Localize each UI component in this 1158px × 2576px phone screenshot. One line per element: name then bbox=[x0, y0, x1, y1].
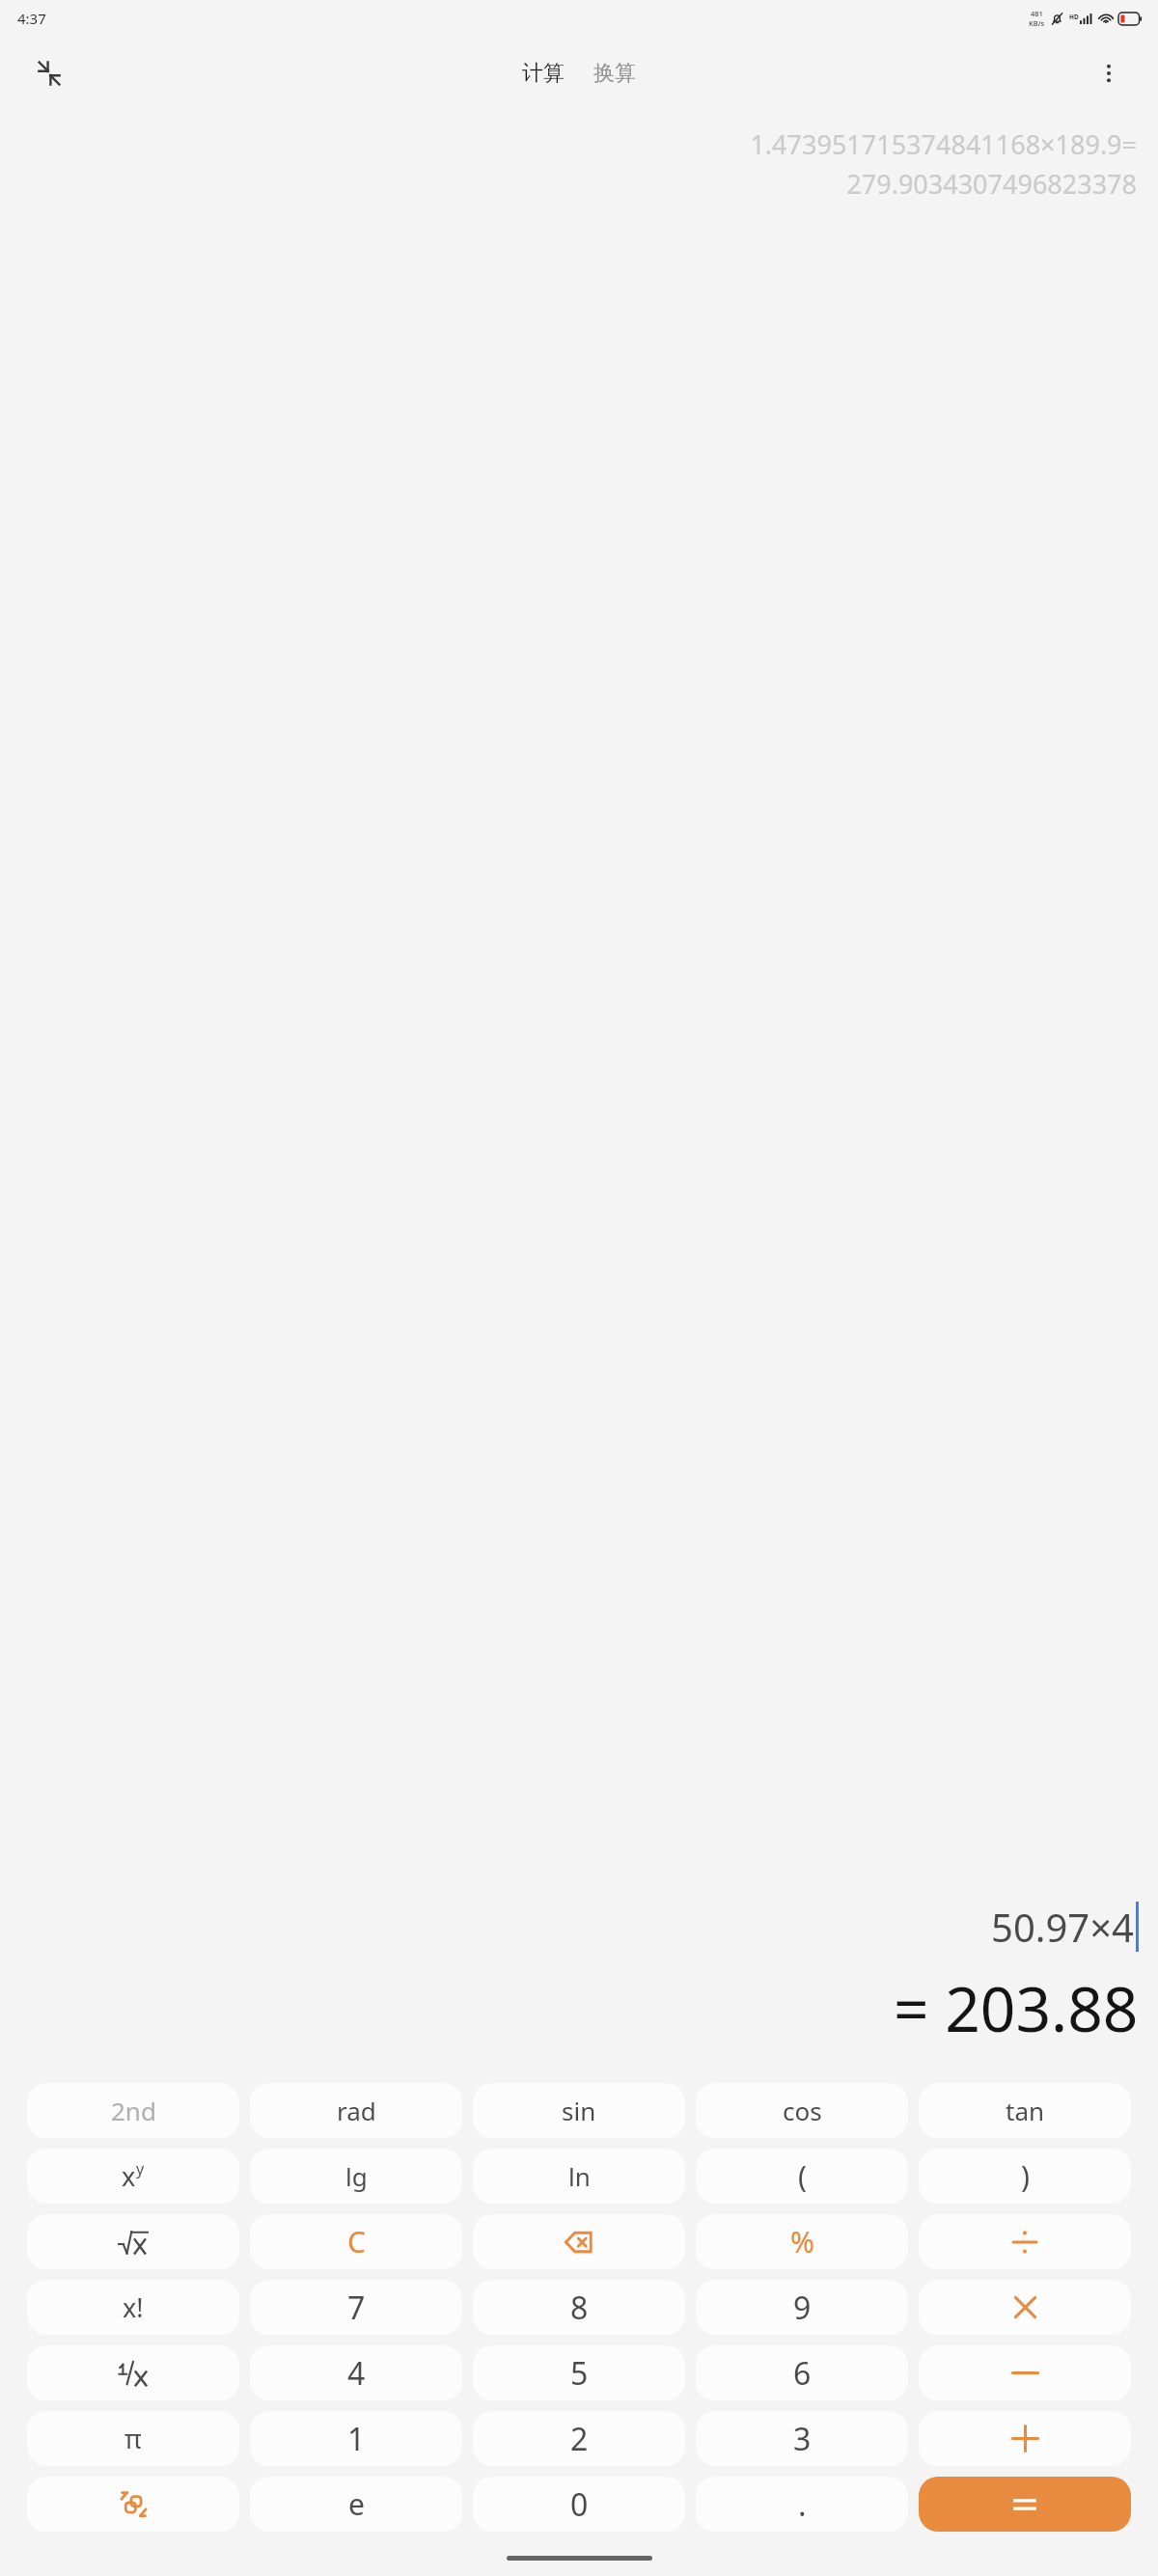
button[interactable]: π bbox=[27, 2411, 239, 2466]
staticText: x! bbox=[123, 2289, 144, 2325]
button[interactable]: 5 bbox=[473, 2345, 685, 2400]
button[interactable]: e bbox=[250, 2477, 462, 2532]
staticText: 7 bbox=[347, 2287, 366, 2329]
button[interactable]: Collapse bbox=[21, 45, 77, 101]
staticText: e bbox=[348, 2484, 365, 2524]
staticText: tan bbox=[1006, 2094, 1045, 2127]
staticText: 5 bbox=[570, 2352, 589, 2395]
staticText: HD bbox=[1069, 13, 1079, 21]
staticText: 4:37 bbox=[17, 9, 46, 28]
button[interactable]: 2 bbox=[473, 2411, 685, 2466]
button[interactable]: ) bbox=[919, 2149, 1131, 2204]
staticText: y bbox=[136, 2158, 145, 2179]
staticText: 换算 bbox=[593, 60, 636, 87]
staticText: ) bbox=[1021, 2156, 1030, 2196]
button[interactable]: 7 bbox=[250, 2280, 462, 2335]
button[interactable]: Reciprocal bbox=[27, 2345, 239, 2400]
staticText: 8 bbox=[570, 2287, 589, 2329]
button[interactable]: 2nd bbox=[27, 2083, 239, 2138]
staticText: ( bbox=[798, 2156, 807, 2196]
button[interactable]: 计算 bbox=[514, 54, 572, 93]
staticText: 1.473951715374841168×189.9= bbox=[750, 126, 1137, 162]
staticText: 2 bbox=[570, 2418, 589, 2460]
button[interactable]: 6 bbox=[696, 2345, 908, 2400]
staticText: C bbox=[347, 2222, 366, 2261]
button[interactable]: 9 bbox=[696, 2280, 908, 2335]
button[interactable]: ( bbox=[696, 2149, 908, 2204]
staticText: . bbox=[798, 2483, 807, 2526]
staticText: sin bbox=[562, 2094, 596, 2127]
staticText: 计算 bbox=[522, 60, 565, 87]
button[interactable]: C bbox=[250, 2214, 462, 2269]
staticText: lg bbox=[345, 2159, 368, 2193]
staticText: ln bbox=[568, 2159, 591, 2193]
staticText: rad bbox=[337, 2094, 376, 2127]
staticText: 1 bbox=[347, 2418, 366, 2460]
staticText: = 203.88 bbox=[894, 1966, 1139, 2050]
button[interactable]: ln bbox=[473, 2149, 685, 2204]
staticText: 6 bbox=[793, 2352, 812, 2395]
button[interactable]: 0 bbox=[473, 2477, 685, 2532]
button[interactable]: Minus bbox=[919, 2345, 1131, 2400]
button[interactable]: % bbox=[696, 2214, 908, 2269]
button[interactable]: Square root bbox=[27, 2214, 239, 2269]
staticText: 50.97×4 bbox=[991, 1901, 1134, 1953]
button[interactable]: Plus bbox=[919, 2411, 1131, 2466]
button[interactable]: tan bbox=[919, 2083, 1131, 2138]
staticText: 279.9034307496823378 bbox=[846, 166, 1137, 202]
button[interactable]: 4 bbox=[250, 2345, 462, 2400]
button[interactable]: cos bbox=[696, 2083, 908, 2138]
button[interactable]: 3 bbox=[696, 2411, 908, 2466]
button[interactable]: 1 bbox=[250, 2411, 462, 2466]
button[interactable]: 换算 bbox=[586, 54, 644, 93]
staticText: KB/s bbox=[1029, 18, 1045, 28]
button[interactable]: lg bbox=[250, 2149, 462, 2204]
button[interactable]: Backspace bbox=[473, 2214, 685, 2269]
button[interactable]: . bbox=[696, 2477, 908, 2532]
staticText: 2nd bbox=[111, 2094, 156, 2127]
button[interactable]: Divide bbox=[919, 2214, 1131, 2269]
button[interactable]: sin bbox=[473, 2083, 685, 2138]
staticText: π bbox=[124, 2421, 142, 2456]
staticText: cos bbox=[783, 2094, 822, 2127]
button[interactable]: Power bbox=[27, 2149, 239, 2204]
staticText: 481 bbox=[1031, 9, 1043, 18]
staticText: 3 bbox=[793, 2418, 812, 2460]
button[interactable]: More options bbox=[1081, 45, 1137, 101]
button[interactable]: 8 bbox=[473, 2280, 685, 2335]
button[interactable]: rad bbox=[250, 2083, 462, 2138]
button[interactable]: Multiply bbox=[919, 2280, 1131, 2335]
staticText: 4 bbox=[347, 2352, 366, 2395]
button[interactable]: Unit convert bbox=[27, 2477, 239, 2532]
staticText: 9 bbox=[793, 2287, 812, 2329]
staticText: x bbox=[122, 2158, 136, 2194]
staticText: 0 bbox=[570, 2483, 589, 2526]
button[interactable]: Equals bbox=[919, 2477, 1131, 2532]
staticText: % bbox=[790, 2222, 814, 2261]
button[interactable]: Factorial bbox=[27, 2280, 239, 2335]
